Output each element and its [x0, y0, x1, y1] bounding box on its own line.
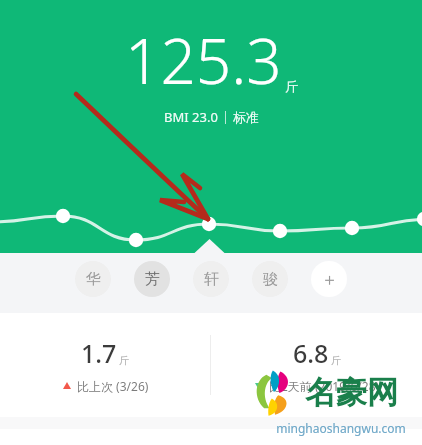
staticText: 125.3 — [125, 18, 282, 102]
button[interactable]: 芳 — [134, 261, 170, 297]
button[interactable]: 华 — [75, 261, 111, 297]
staticText: 斤 — [331, 354, 341, 367]
staticText: 骏 — [263, 270, 278, 289]
staticText: 斤 — [119, 354, 129, 367]
staticText: 6.8 — [293, 336, 329, 370]
staticText: 比2天前 (2019/6/28) — [269, 378, 380, 394]
button[interactable]: 6.8 — [211, 313, 422, 417]
staticText: BMI 23.0 — [164, 108, 218, 126]
button[interactable]: 1.7 — [0, 313, 210, 417]
staticText: 标准 — [233, 109, 259, 125]
button[interactable]: 骏 — [252, 261, 288, 297]
staticText: 芳 — [145, 270, 160, 289]
button[interactable]: BMI 23.0 — [164, 108, 259, 126]
staticText: 华 — [86, 270, 101, 289]
staticText: 斤 — [285, 78, 298, 94]
staticText: ＋ — [321, 269, 338, 290]
button[interactable]: 轩 — [193, 261, 229, 297]
staticText: minghaoshangwu.com — [276, 420, 406, 436]
button[interactable]: Add member — [311, 261, 347, 297]
staticText: 轩 — [204, 270, 219, 289]
staticText: 名豪网 — [305, 373, 398, 412]
staticText: 比上次 (3/26) — [77, 378, 149, 394]
staticText: 1.7 — [81, 336, 117, 370]
